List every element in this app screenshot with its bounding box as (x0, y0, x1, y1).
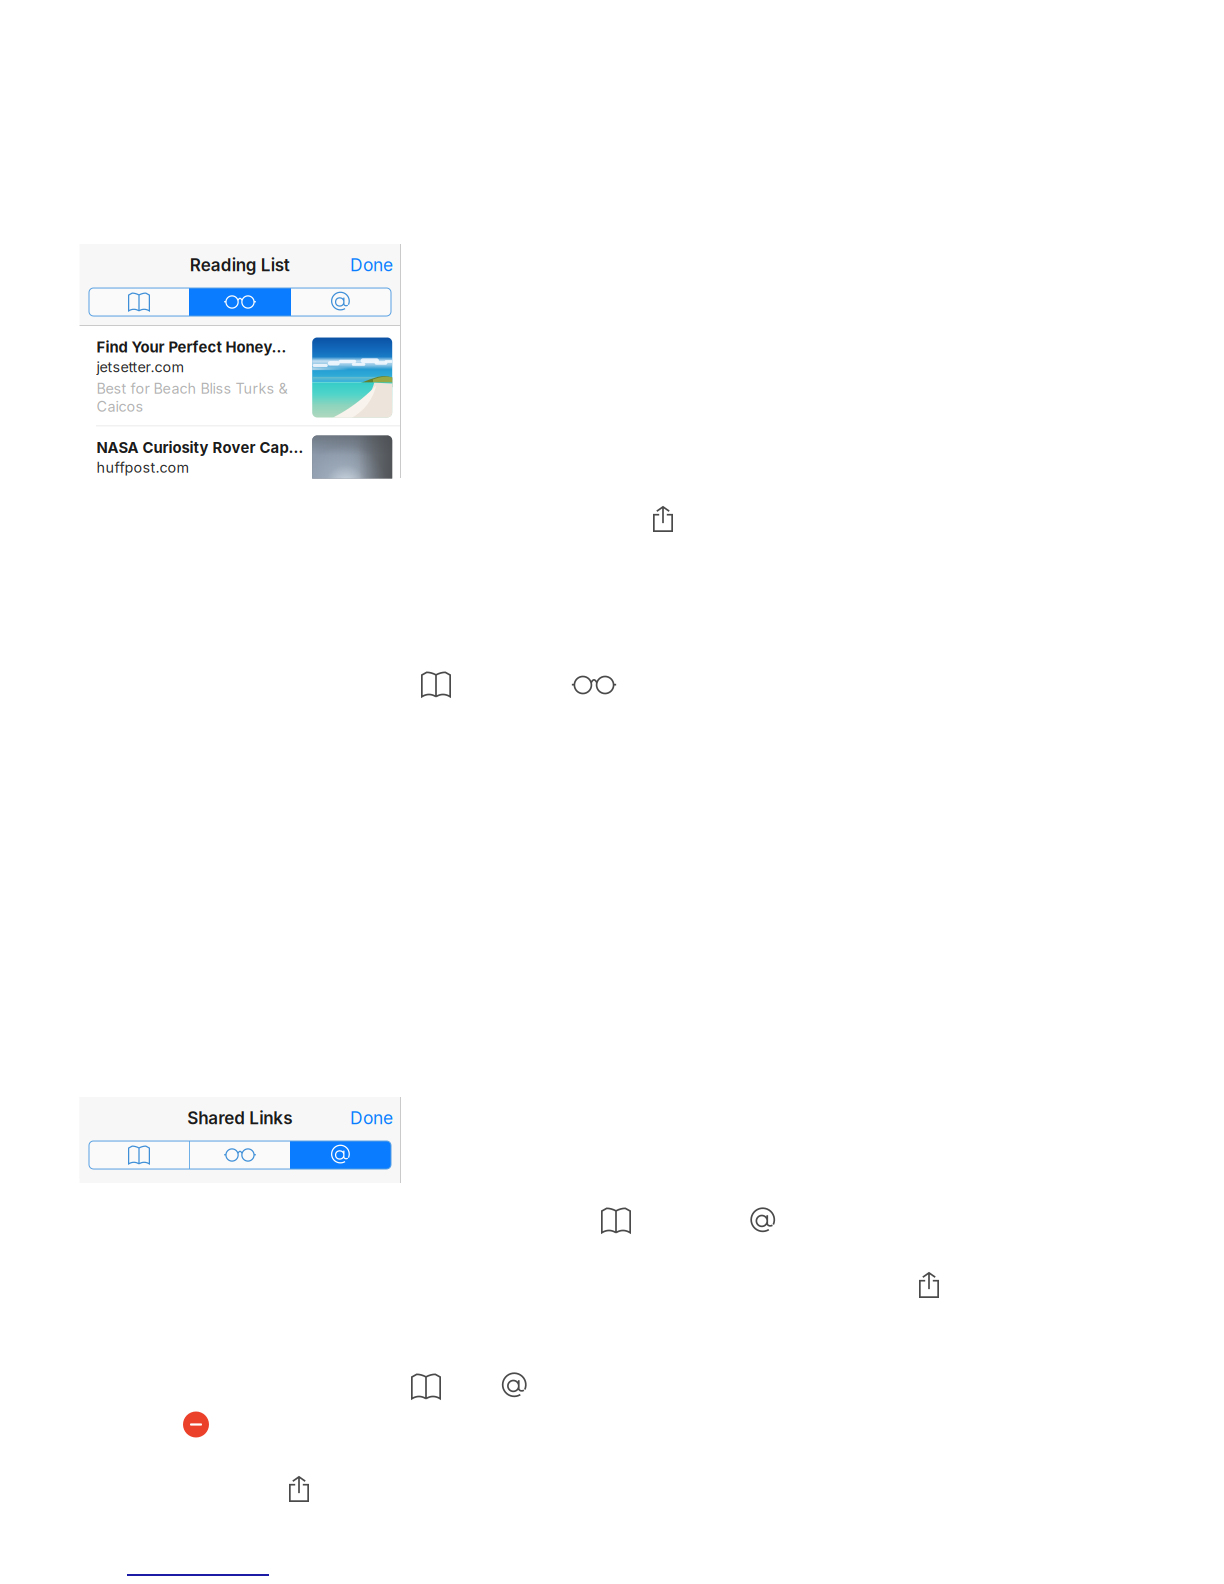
button[interactable]: Shared Links (291, 288, 391, 316)
button[interactable]: Share (653, 506, 673, 532)
staticText: Best for Beach Bliss Turks & (96, 380, 287, 397)
button[interactable]: Done (337, 256, 393, 274)
button[interactable]: Done (337, 1109, 393, 1127)
staticText: Done (350, 1107, 393, 1128)
button[interactable]: Bookmarks (601, 1207, 631, 1233)
button[interactable]: Bookmarks (89, 288, 189, 316)
staticText: Shared Links (187, 1108, 292, 1128)
button[interactable]: Share (919, 1272, 939, 1298)
button[interactable]: Reading List (190, 288, 290, 316)
button[interactable]: Find Your Perfect Honey… (79, 326, 401, 426)
staticText: Caicos (96, 398, 143, 415)
button[interactable]: Bookmarks (89, 1141, 189, 1169)
staticText: Done (350, 254, 393, 275)
staticText: NASA Curiosity Rover Cap… (96, 438, 303, 456)
button[interactable]: Shared Links (751, 1207, 776, 1234)
button[interactable]: Bookmarks (421, 671, 451, 697)
button[interactable]: Reading List (190, 1141, 290, 1169)
button[interactable]: Remove (183, 1411, 209, 1437)
button[interactable]: NASA Curiosity Rover Cap… (79, 426, 401, 478)
button[interactable]: Bookmarks (411, 1373, 441, 1399)
staticText: Find Your Perfect Honey… (96, 338, 286, 356)
button[interactable]: Shared Links (502, 1372, 527, 1399)
staticText: Reading List (190, 255, 290, 275)
staticText: jetsetter.com (96, 358, 184, 376)
staticText: huffpost.com (96, 459, 189, 476)
button[interactable]: Share (289, 1476, 309, 1502)
button[interactable]: Shared Links (291, 1141, 391, 1169)
button[interactable]: Reading List (571, 675, 617, 695)
